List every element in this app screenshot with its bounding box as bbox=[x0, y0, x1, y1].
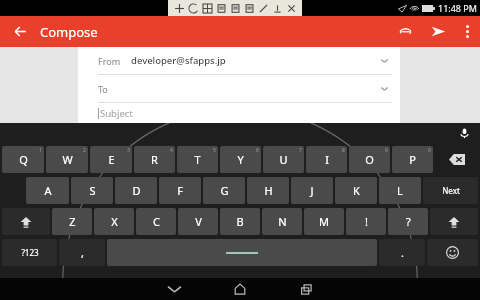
button[interactable]: E bbox=[90, 146, 132, 173]
button[interactable]: X bbox=[94, 208, 134, 235]
staticText: To bbox=[98, 83, 108, 95]
staticText: 1 bbox=[39, 147, 42, 154]
button[interactable]: From bbox=[78, 47, 400, 75]
button[interactable]: B bbox=[220, 208, 260, 235]
button[interactable]: Y bbox=[220, 146, 261, 173]
staticText: H bbox=[264, 183, 273, 198]
staticText: F bbox=[177, 183, 183, 198]
button[interactable]: Shift bbox=[2, 208, 50, 235]
staticText: ! bbox=[365, 214, 368, 229]
button[interactable]: Z bbox=[52, 208, 92, 235]
button[interactable]: N bbox=[262, 208, 302, 235]
button[interactable]: ? bbox=[388, 208, 428, 235]
staticText: Y bbox=[237, 152, 244, 167]
staticText: , bbox=[81, 245, 84, 260]
button[interactable]: Attach file bbox=[388, 16, 422, 47]
staticText: Subject bbox=[100, 107, 133, 120]
button[interactable]: H bbox=[247, 177, 289, 204]
staticText: . bbox=[401, 245, 404, 260]
staticText: 5 bbox=[213, 147, 216, 154]
button[interactable]: Tool 3 bbox=[214, 2, 228, 15]
staticText: Next bbox=[442, 185, 460, 196]
button[interactable]: More options bbox=[454, 16, 480, 47]
staticText: 6 bbox=[256, 147, 259, 154]
staticText: P bbox=[409, 152, 416, 167]
button[interactable]: Recent apps bbox=[284, 278, 328, 300]
button[interactable]: Tool 0 bbox=[172, 2, 186, 15]
staticText: 0 bbox=[428, 147, 431, 154]
staticText: Q bbox=[19, 152, 28, 167]
button[interactable]: Tool 4 bbox=[228, 2, 242, 15]
button[interactable]: L bbox=[379, 177, 421, 204]
staticText: I bbox=[325, 152, 329, 167]
staticText: 4 bbox=[170, 147, 173, 154]
staticText: 8 bbox=[342, 147, 345, 154]
button[interactable]: Back bbox=[0, 16, 40, 47]
button[interactable]: R bbox=[134, 146, 175, 173]
staticText: G bbox=[220, 183, 229, 198]
button[interactable]: ?123 bbox=[2, 239, 57, 266]
button[interactable]: . bbox=[379, 239, 425, 266]
button[interactable]: Voice input bbox=[448, 123, 480, 144]
button[interactable]: To bbox=[78, 75, 400, 103]
button[interactable]: D bbox=[115, 177, 157, 204]
staticText: V bbox=[195, 214, 202, 229]
staticText: X bbox=[111, 214, 118, 229]
staticText: E bbox=[108, 152, 115, 167]
button[interactable]: F bbox=[159, 177, 201, 204]
staticText: 9 bbox=[385, 147, 388, 154]
button[interactable]: W bbox=[46, 146, 88, 173]
button[interactable]: M bbox=[304, 208, 344, 235]
button[interactable]: S bbox=[71, 177, 113, 204]
staticText: 2 bbox=[83, 147, 86, 154]
staticText: D bbox=[132, 183, 141, 198]
button[interactable]: Subject bbox=[98, 103, 400, 123]
button[interactable]: Tool 2 bbox=[200, 2, 214, 15]
button[interactable]: G bbox=[203, 177, 245, 204]
button[interactable]: K bbox=[335, 177, 377, 204]
staticText: ? bbox=[406, 214, 411, 229]
button[interactable]: Home bbox=[218, 278, 262, 300]
button[interactable]: Space bbox=[107, 239, 377, 266]
button[interactable]: T bbox=[177, 146, 218, 173]
staticText: N bbox=[278, 214, 287, 229]
button[interactable]: C bbox=[136, 208, 176, 235]
staticText: 7 bbox=[299, 147, 302, 154]
staticText: B bbox=[236, 214, 244, 229]
staticText: O bbox=[365, 152, 374, 167]
button[interactable]: P bbox=[392, 146, 433, 173]
button[interactable]: Q bbox=[2, 146, 44, 173]
button[interactable]: Tool 6 bbox=[256, 2, 270, 15]
button[interactable]: Tool 5 bbox=[242, 2, 256, 15]
staticText: S bbox=[89, 183, 96, 198]
staticText: 3 bbox=[127, 147, 130, 154]
staticText: K bbox=[353, 183, 360, 198]
button[interactable]: I bbox=[306, 146, 347, 173]
button[interactable]: ! bbox=[346, 208, 386, 235]
button[interactable]: Next bbox=[423, 177, 478, 204]
staticText: Compose bbox=[40, 23, 98, 41]
staticText: R bbox=[151, 152, 158, 167]
staticText: T bbox=[194, 152, 201, 167]
button[interactable]: Shift bbox=[430, 208, 478, 235]
staticText: ?123 bbox=[21, 247, 39, 258]
button[interactable]: Send bbox=[422, 16, 454, 47]
staticText: A bbox=[44, 183, 52, 198]
button[interactable]: J bbox=[291, 177, 333, 204]
button[interactable]: Tool 7 bbox=[270, 2, 284, 15]
staticText: From bbox=[98, 55, 121, 67]
button[interactable]: V bbox=[178, 208, 218, 235]
button[interactable]: U bbox=[263, 146, 304, 173]
button[interactable]: O bbox=[349, 146, 390, 173]
button[interactable]: Emoji bbox=[427, 239, 478, 266]
staticText: W bbox=[62, 152, 73, 167]
button[interactable]: Tool 1 bbox=[186, 2, 200, 15]
staticText: C bbox=[153, 214, 160, 229]
button[interactable]: Hide keyboard bbox=[152, 278, 196, 300]
staticText: 11:48 PM bbox=[438, 2, 477, 14]
button[interactable]: A bbox=[26, 177, 69, 204]
staticText: U bbox=[279, 152, 288, 167]
button[interactable]: Backspace bbox=[435, 146, 478, 173]
button[interactable]: Tool 8 bbox=[284, 2, 298, 15]
button[interactable]: , bbox=[59, 239, 105, 266]
